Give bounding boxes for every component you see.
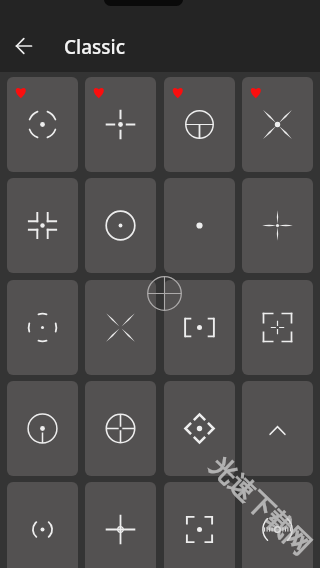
staticText: 光速下载网 (204, 450, 318, 562)
button[interactable]: Reticle 6 (85, 178, 156, 273)
button[interactable]: Reticle 4 (242, 77, 313, 172)
button[interactable]: Reticle 10 (85, 280, 156, 375)
button[interactable]: Reticle 15 (164, 381, 235, 476)
button[interactable]: Reticle 3 (164, 77, 235, 172)
button[interactable]: Reticle 5 (7, 178, 78, 273)
button[interactable]: Reticle 18 (85, 482, 156, 568)
button[interactable]: Reticle 11 (164, 280, 235, 375)
button[interactable]: Reticle 1 (7, 77, 78, 172)
button[interactable]: Reticle 12 (242, 280, 313, 375)
button[interactable]: Reticle 2 (85, 77, 156, 172)
button[interactable]: Reticle 19 (164, 482, 235, 568)
button[interactable]: Reticle 9 (7, 280, 78, 375)
staticText: Classic (64, 34, 125, 60)
button[interactable]: Reticle 13 (7, 381, 78, 476)
button[interactable]: Reticle 20 (242, 482, 313, 568)
button[interactable]: Reticle 14 (85, 381, 156, 476)
button[interactable]: Reticle 16 (242, 381, 313, 476)
button[interactable]: Reticle 8 (242, 178, 313, 273)
button[interactable]: Back (9, 30, 41, 62)
button[interactable]: Reticle 7 (164, 178, 235, 273)
button[interactable]: Reticle 17 (7, 482, 78, 568)
